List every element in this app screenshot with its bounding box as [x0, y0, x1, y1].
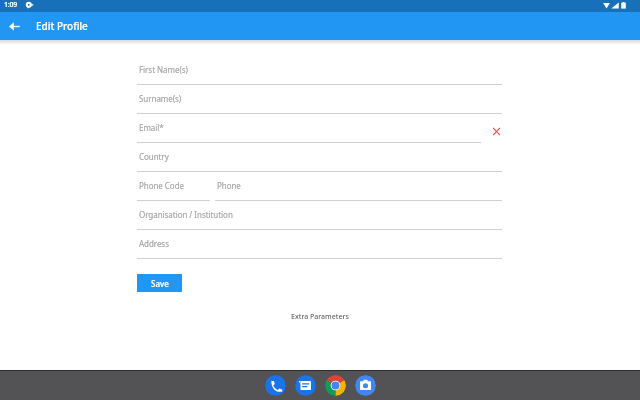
staticText: Organisation / Institution — [139, 209, 233, 220]
staticText: Extra Parameters — [291, 312, 349, 322]
staticText: Address — [139, 238, 169, 249]
staticText: First Name(s) — [139, 64, 188, 75]
button[interactable]: Country — [137, 143, 502, 172]
button[interactable]: Chrome — [325, 375, 346, 396]
staticText: Surname(s) — [139, 93, 182, 104]
staticText: Phone Code — [139, 180, 184, 191]
button[interactable]: Back — [0, 12, 28, 40]
button[interactable]: Save — [137, 274, 182, 292]
staticText: Save — [151, 278, 169, 289]
staticText: Country — [139, 151, 169, 162]
button[interactable]: Messages — [295, 375, 316, 396]
button[interactable]: Email* — [137, 114, 502, 143]
button[interactable]: First Name(s) — [137, 56, 502, 85]
button[interactable]: Phone — [215, 172, 502, 201]
staticText: Edit Profile — [36, 19, 88, 33]
button[interactable]: Extra Parameters — [285, 310, 355, 324]
button[interactable]: Organisation / Institution — [137, 201, 502, 230]
button[interactable]: Surname(s) — [137, 85, 502, 114]
button[interactable]: Phone — [265, 375, 286, 396]
button[interactable]: Phone Code — [137, 172, 210, 201]
button[interactable]: Camera — [355, 375, 376, 396]
staticText: 1:09 — [4, 0, 18, 10]
staticText: Phone — [217, 180, 241, 191]
button[interactable]: Address — [137, 230, 502, 259]
staticText: Email* — [139, 122, 164, 133]
